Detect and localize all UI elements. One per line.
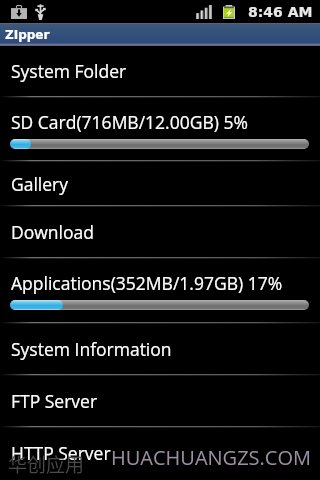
- button[interactable]: Applications(352MB/1.97GB) 17%: [0, 259, 320, 322]
- button[interactable]: Gallery: [0, 162, 320, 205]
- staticText: System Information: [11, 337, 172, 361]
- staticText: 华创应用: [8, 450, 85, 478]
- other: Download: [11, 5, 27, 19]
- staticText: Applications(352MB/1.97GB) 17%: [11, 271, 283, 295]
- staticText: HUACHUANGZS.COM: [111, 444, 311, 471]
- staticText: System Folder: [11, 59, 127, 83]
- staticText: HTTP Server: [11, 441, 111, 465]
- button[interactable]: Download: [0, 207, 320, 257]
- staticText: ZIpper: [5, 28, 50, 42]
- button[interactable]: HTTP Server: [0, 428, 320, 478]
- staticText: Gallery: [11, 172, 69, 196]
- staticText: FTP Server: [11, 389, 98, 413]
- staticText: Download: [11, 220, 94, 244]
- button[interactable]: System Folder: [0, 46, 320, 96]
- staticText: 8:46 AM: [248, 4, 313, 20]
- button[interactable]: System Information: [0, 324, 320, 374]
- button[interactable]: FTP Server: [0, 376, 320, 426]
- other: USB connected: [35, 4, 46, 20]
- button[interactable]: SD Card(716MB/12.00GB) 5%: [0, 98, 320, 160]
- staticText: SD Card(716MB/12.00GB) 5%: [11, 110, 248, 134]
